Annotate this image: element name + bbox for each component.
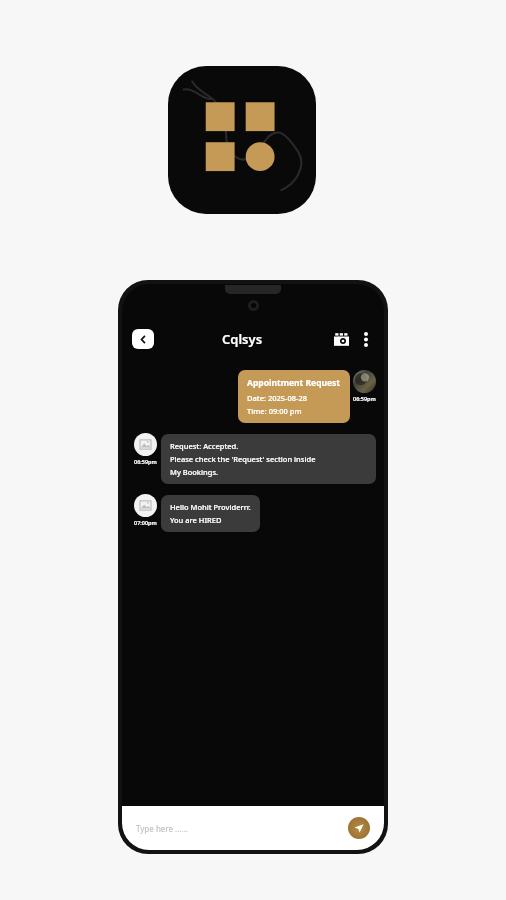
button[interactable]: Type here ...... xyxy=(136,813,348,843)
staticText: Time: 09:00 pm xyxy=(247,406,302,416)
staticText: Please check the 'Request' section insid… xyxy=(170,454,316,464)
button[interactable]: Send xyxy=(348,817,370,839)
staticText: Cqlsys xyxy=(222,330,263,348)
staticText: Hello Mohit Providerrr. xyxy=(170,502,251,512)
button[interactable]: Profile photo xyxy=(353,370,376,393)
staticText: You are HIRED xyxy=(170,515,222,525)
staticText: Request: Accepted. xyxy=(170,441,239,451)
button[interactable]: Contact photo xyxy=(134,494,157,517)
staticText: 06:59pm xyxy=(134,458,157,465)
staticText: Type here ...... xyxy=(136,823,188,834)
button[interactable]: Hello Mohit Providerrr. xyxy=(161,495,260,532)
button[interactable]: Camera xyxy=(330,328,352,350)
button[interactable]: More options xyxy=(358,328,374,350)
button[interactable]: Back xyxy=(132,329,154,349)
button[interactable]: Contact photo xyxy=(134,433,157,456)
button[interactable]: Appointment Request xyxy=(238,370,350,423)
staticText: Appointment Request xyxy=(247,377,341,389)
staticText: My Bookings. xyxy=(170,467,219,477)
button[interactable]: App icon xyxy=(168,66,316,214)
staticText: Date: 2025-08-28 xyxy=(247,393,308,403)
staticText: 07:00pm xyxy=(134,519,157,526)
button[interactable]: Request: Accepted. xyxy=(161,434,376,484)
staticText: 06:59pm xyxy=(353,395,376,402)
